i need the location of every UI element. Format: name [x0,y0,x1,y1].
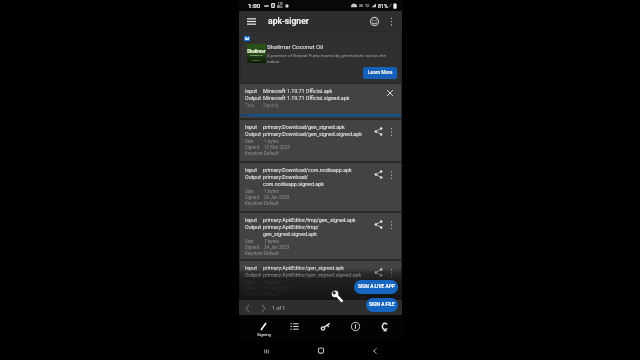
button[interactable]: More options [386,126,397,137]
button[interactable]: SIGN A FILE [366,298,398,312]
staticText: kB/s [277,6,283,9]
staticText: Size [245,139,264,144]
staticText: 1 bytes [264,239,279,244]
button[interactable]: More options [386,219,397,230]
staticText: Signed [245,286,264,291]
staticText: Output [245,131,263,137]
button[interactable]: Share [373,267,384,278]
staticText: 26 [359,4,364,8]
staticText: Output [245,224,263,230]
staticText: SIGN A FILE [369,302,395,308]
staticText: Minecraft 1.19.71 Official.apk [263,88,333,94]
staticText: 10 Mar 2023 [264,145,290,150]
button[interactable]: Input [240,213,401,259]
staticText: Input [245,124,263,130]
button[interactable]: Share [373,169,384,180]
button[interactable]: Next page [258,303,268,313]
staticText: 1 bytes [264,189,279,194]
staticText: primary:Download/ [263,174,308,180]
staticText: 1:00 [248,2,261,9]
staticText: primary:Download/gen_signed.apk [263,124,345,130]
staticText: apk-signer [268,16,309,26]
staticText: Output [245,272,263,278]
button[interactable]: Previous page [242,303,252,313]
staticText: Input [245,217,263,223]
staticText: Minecraft 1.19.71 Official.signed.apk [263,95,350,101]
staticText: Size [245,189,264,194]
staticText: 24 Jan 2023 [264,245,290,250]
staticText: Shalimar Coconut Oil [267,43,324,50]
staticText: Default [264,201,279,206]
staticText: Input [245,265,263,271]
button[interactable]: SIGN A LIVE APP [354,280,398,294]
button[interactable]: More options [383,13,399,29]
staticText: NATURAL [252,59,261,61]
staticText: primary:ApkEditor/tmp/ [263,224,319,230]
button[interactable]: Input [240,163,401,211]
staticText: Signed [245,145,264,150]
staticText: Input [245,167,263,173]
button[interactable]: Settings [370,315,400,342]
staticText: Output [245,95,263,101]
staticText: Output [245,174,263,180]
staticText: 12 [365,4,370,8]
staticText: primary:ApkEditor/gen_signed.signed.apk [263,272,362,278]
staticText: primary:ApkEditor/gen_signed.apk [263,265,344,271]
button[interactable]: Cancel [385,88,395,98]
staticText: 1 bytes [264,139,279,144]
button[interactable]: Menu [243,13,259,29]
button[interactable]: Share [373,126,384,137]
staticText: primary:Download/gen_signed.signed.apk [263,131,362,137]
button[interactable]: Account [366,13,382,29]
button[interactable]: Input [240,261,401,300]
staticText: Signed [245,245,264,250]
staticText: Keystore [245,151,264,156]
button[interactable]: Learn More [363,67,397,79]
button[interactable]: Input [240,84,401,117]
staticText: SIGN A LIVE APP [358,284,395,290]
staticText: Default [264,292,279,297]
staticText: A promise of Natural Purity trusted by g… [267,53,395,64]
button[interactable]: Info [340,315,370,342]
staticText: 81% [378,3,388,9]
button[interactable]: Home [294,342,348,360]
staticText: Input [245,88,263,94]
button[interactable]: Recent apps [239,342,294,360]
staticText: 24 Jan 2023 [264,286,290,291]
staticText: Default [264,251,279,256]
staticText: gen_signed.signed.apk [263,231,317,237]
button[interactable]: Keystores [310,315,340,342]
staticText: Signing [257,332,271,337]
button[interactable]: Tools [329,288,345,304]
staticText: Size [245,280,264,285]
staticText: Keystore [245,251,264,256]
button[interactable]: Back [348,342,402,360]
button[interactable]: More options [386,169,397,180]
staticText: com.nodiaapp.signed.apk [263,181,324,187]
staticText: Task [245,103,263,108]
staticText: primary:ApkEditor/tmp/gen_signed.apk [263,217,356,223]
button[interactable]: Signing [248,315,279,342]
staticText: primary:Download/com.nodiaapp.apk [263,167,352,173]
staticText: Default [264,151,279,156]
button[interactable]: Share [373,219,384,230]
button[interactable]: Input [240,120,401,161]
staticText: 1 of 1 [272,305,286,311]
staticText: 26 Jan 2023 [264,195,290,200]
staticText: Signing [263,103,279,108]
button[interactable]: More options [386,267,397,278]
staticText: Keystore [245,201,264,206]
staticText: Ad [245,37,249,41]
button[interactable]: Ad [241,32,400,82]
staticText: Size [245,239,264,244]
staticText: Shalimar [247,49,266,54]
staticText: Signed [245,195,264,200]
staticText: Learn More [368,70,393,76]
staticText: 115 [278,3,283,6]
staticText: 1 bytes [264,280,279,285]
button[interactable]: Tasks [279,315,310,342]
staticText: COCONUT OIL [250,54,263,56]
